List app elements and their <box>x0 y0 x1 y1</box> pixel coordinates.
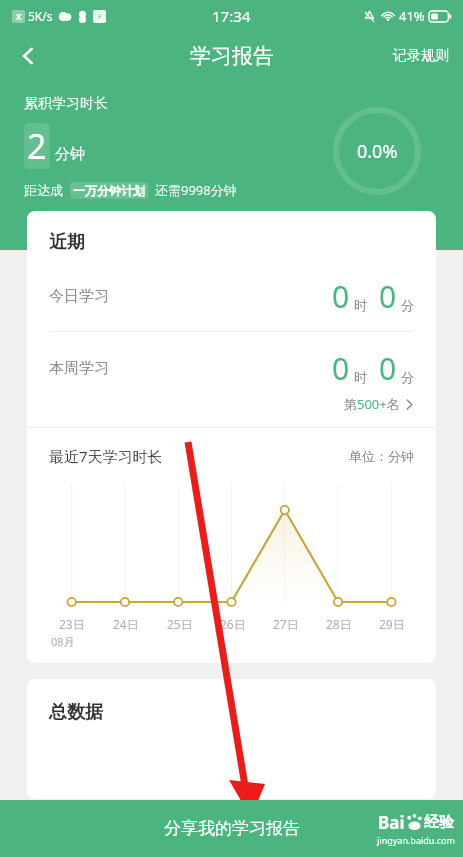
staticText: X <box>16 11 22 22</box>
staticText: 25日 <box>167 616 193 632</box>
staticText: 累积学习时长 <box>24 95 108 113</box>
staticText: 17:34 <box>212 6 251 26</box>
staticText: 0 <box>332 348 350 389</box>
staticText: 26日 <box>220 616 246 632</box>
staticText: 还需9998分钟 <box>155 181 237 199</box>
button[interactable]: Back <box>6 34 50 78</box>
staticText: 分 <box>401 369 414 385</box>
staticText: 2 <box>27 123 47 169</box>
button[interactable]: 分享我的学习报告 <box>0 800 463 857</box>
staticText: 距达成 <box>24 182 63 198</box>
staticText: 分钟 <box>55 145 85 164</box>
staticText: Bai <box>378 811 405 834</box>
staticText: 0 <box>379 276 397 317</box>
staticText: 单位：分钟 <box>349 448 414 464</box>
staticText: jingyan.baidu.com <box>377 834 455 846</box>
staticText: 学习报告 <box>190 43 274 69</box>
staticText: 0.0% <box>357 139 398 164</box>
staticText: 24日 <box>113 616 139 632</box>
staticText: 0 <box>379 348 397 389</box>
staticText: 5K/s <box>28 8 53 24</box>
staticText: 今日学习 <box>49 287 109 306</box>
staticText: ⚡ <box>97 13 102 21</box>
staticText: 23日 <box>59 616 85 632</box>
staticText: 经验 <box>424 813 454 832</box>
staticText: 总数据 <box>49 701 103 724</box>
button[interactable]: 记录规则 <box>379 37 463 75</box>
staticText: 本周学习 <box>49 359 109 378</box>
staticText: 29日 <box>379 616 405 632</box>
staticText: 记录规则 <box>393 47 449 65</box>
staticText: 28日 <box>326 616 352 632</box>
staticText: 分享我的学习报告 <box>164 818 300 839</box>
staticText: 近期 <box>49 231 85 254</box>
staticText: 时 <box>354 297 367 313</box>
staticText: 27日 <box>273 616 299 632</box>
staticText: 第500+名 <box>344 395 400 413</box>
staticText: 0 <box>332 276 350 317</box>
staticText: 最近7天学习时长 <box>49 446 163 466</box>
staticText: 41% <box>399 7 425 25</box>
staticText: 一万分钟计划 <box>73 183 145 198</box>
staticText: 时 <box>354 369 367 385</box>
button[interactable]: 第500+名 <box>344 395 414 413</box>
staticText: 分 <box>401 297 414 313</box>
staticText: 08月 <box>51 634 75 649</box>
